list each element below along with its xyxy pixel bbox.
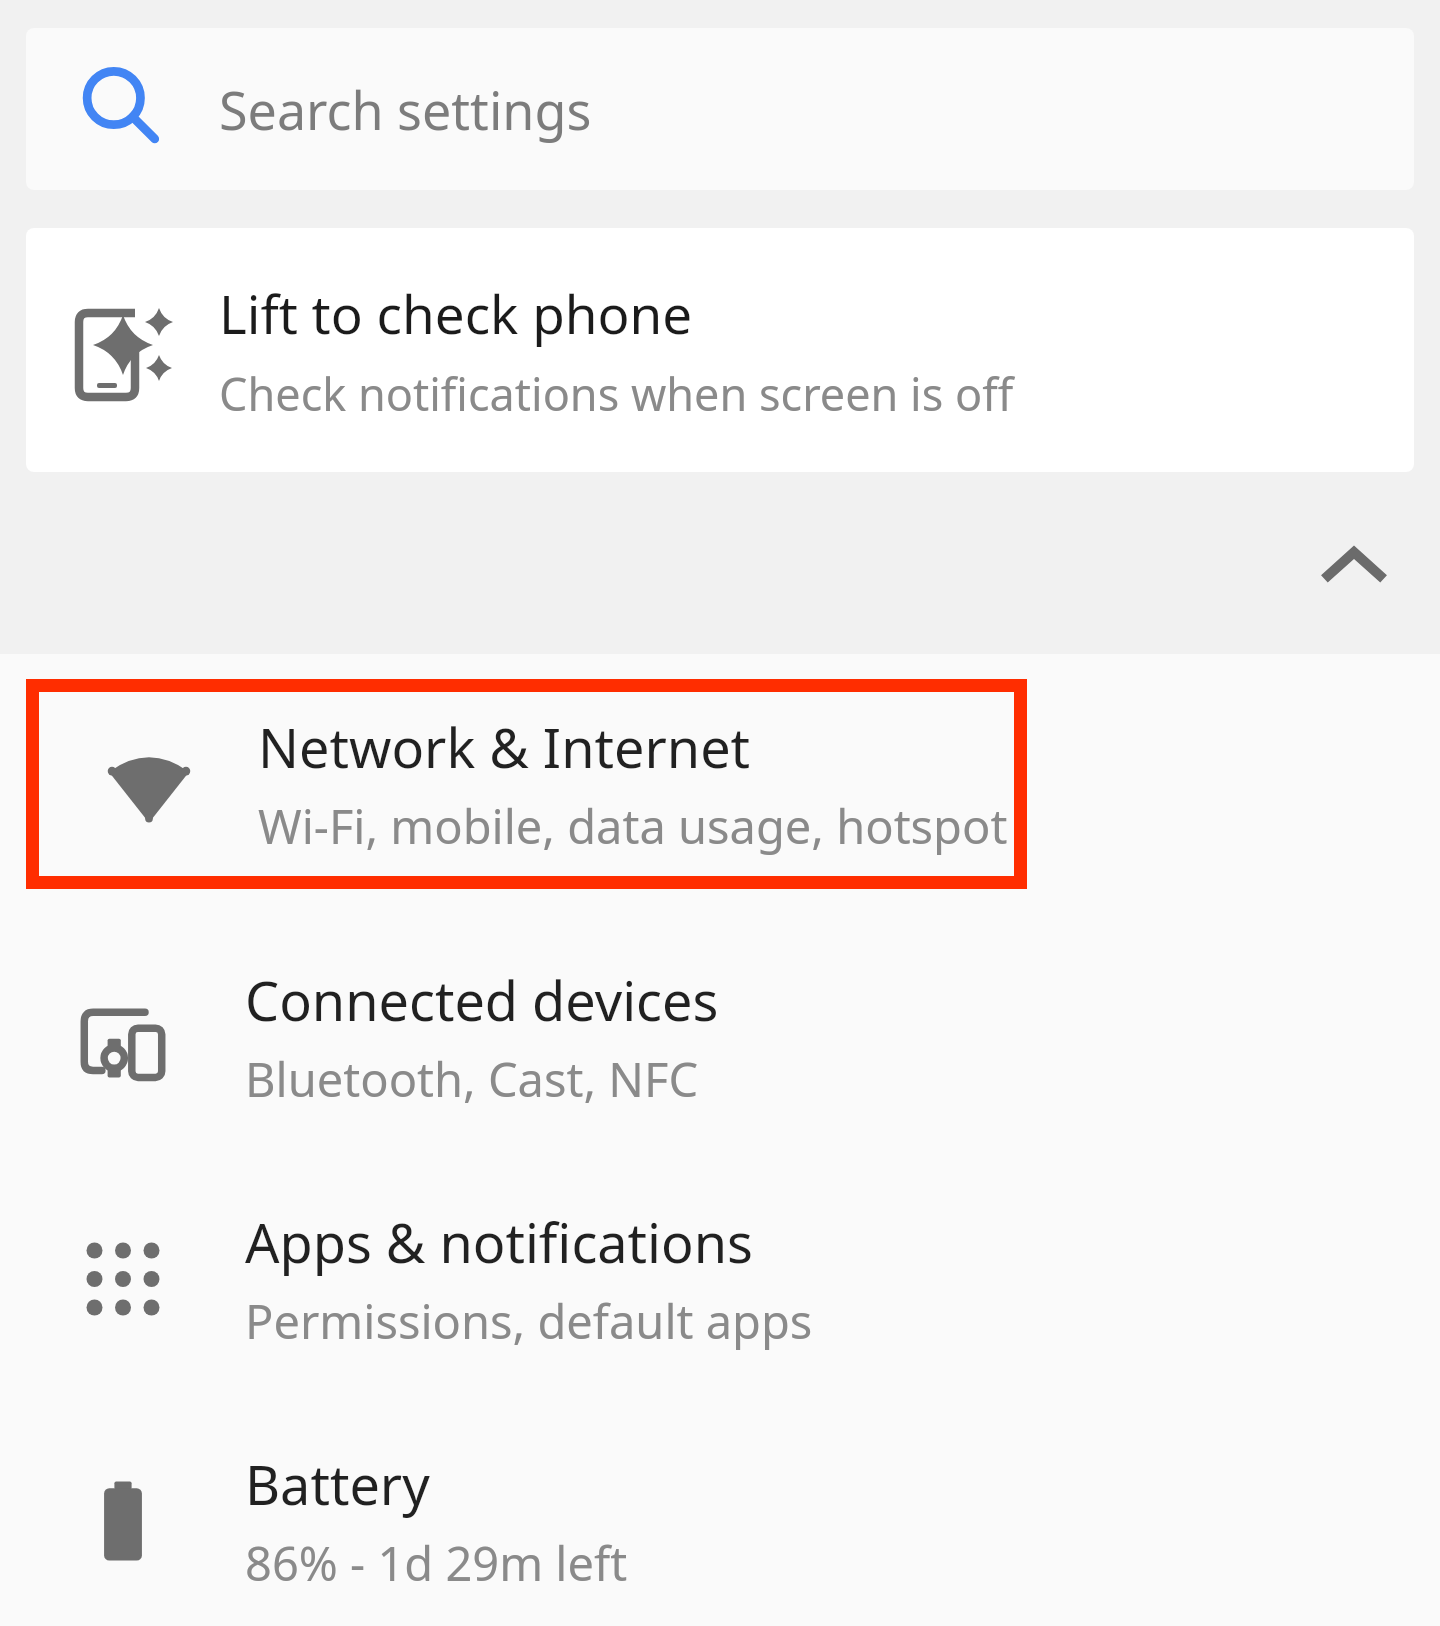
staticText: Wi-Fi, mobile, data usage, hotspot [258, 794, 1008, 858]
button[interactable]: Connected devices [0, 931, 1440, 1143]
button[interactable]: Lift to check phone [26, 228, 1414, 472]
button[interactable]: Apps & notifications [0, 1173, 1440, 1385]
staticText: Bluetooth, Cast, NFC [245, 1047, 699, 1111]
staticText: Network & Internet [258, 710, 751, 784]
staticText: Search settings [219, 74, 592, 145]
staticText: Connected devices [245, 963, 719, 1037]
staticText: Check notifications when screen is off [219, 363, 1014, 424]
button[interactable]: Network & Internet [26, 679, 1027, 889]
button[interactable]: Search settings [26, 28, 1414, 190]
staticText: Apps & notifications [245, 1205, 753, 1279]
staticText: Battery [245, 1447, 430, 1521]
button[interactable]: Battery [0, 1415, 1440, 1626]
button[interactable]: Collapse suggestions [1306, 522, 1402, 618]
staticText: Lift to check phone [219, 277, 693, 349]
staticText: 86% - 1d 29m left [245, 1531, 628, 1595]
staticText: Permissions, default apps [245, 1289, 813, 1353]
